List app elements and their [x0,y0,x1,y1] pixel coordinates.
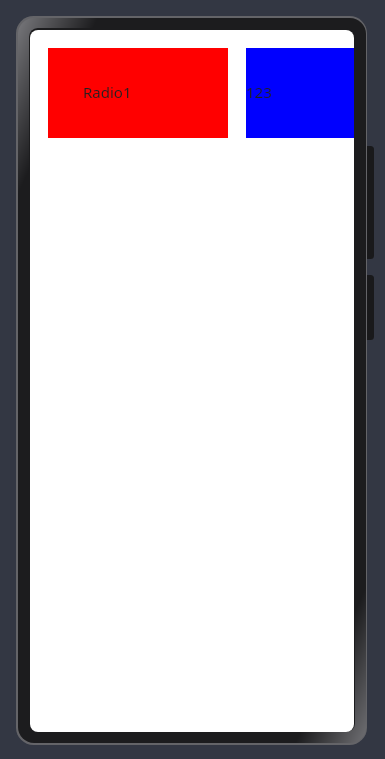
button[interactable]: Radio1 [48,48,228,138]
button[interactable]: 123 [246,48,354,138]
staticText: Radio1 [83,82,132,102]
staticText: 123 [246,82,272,102]
